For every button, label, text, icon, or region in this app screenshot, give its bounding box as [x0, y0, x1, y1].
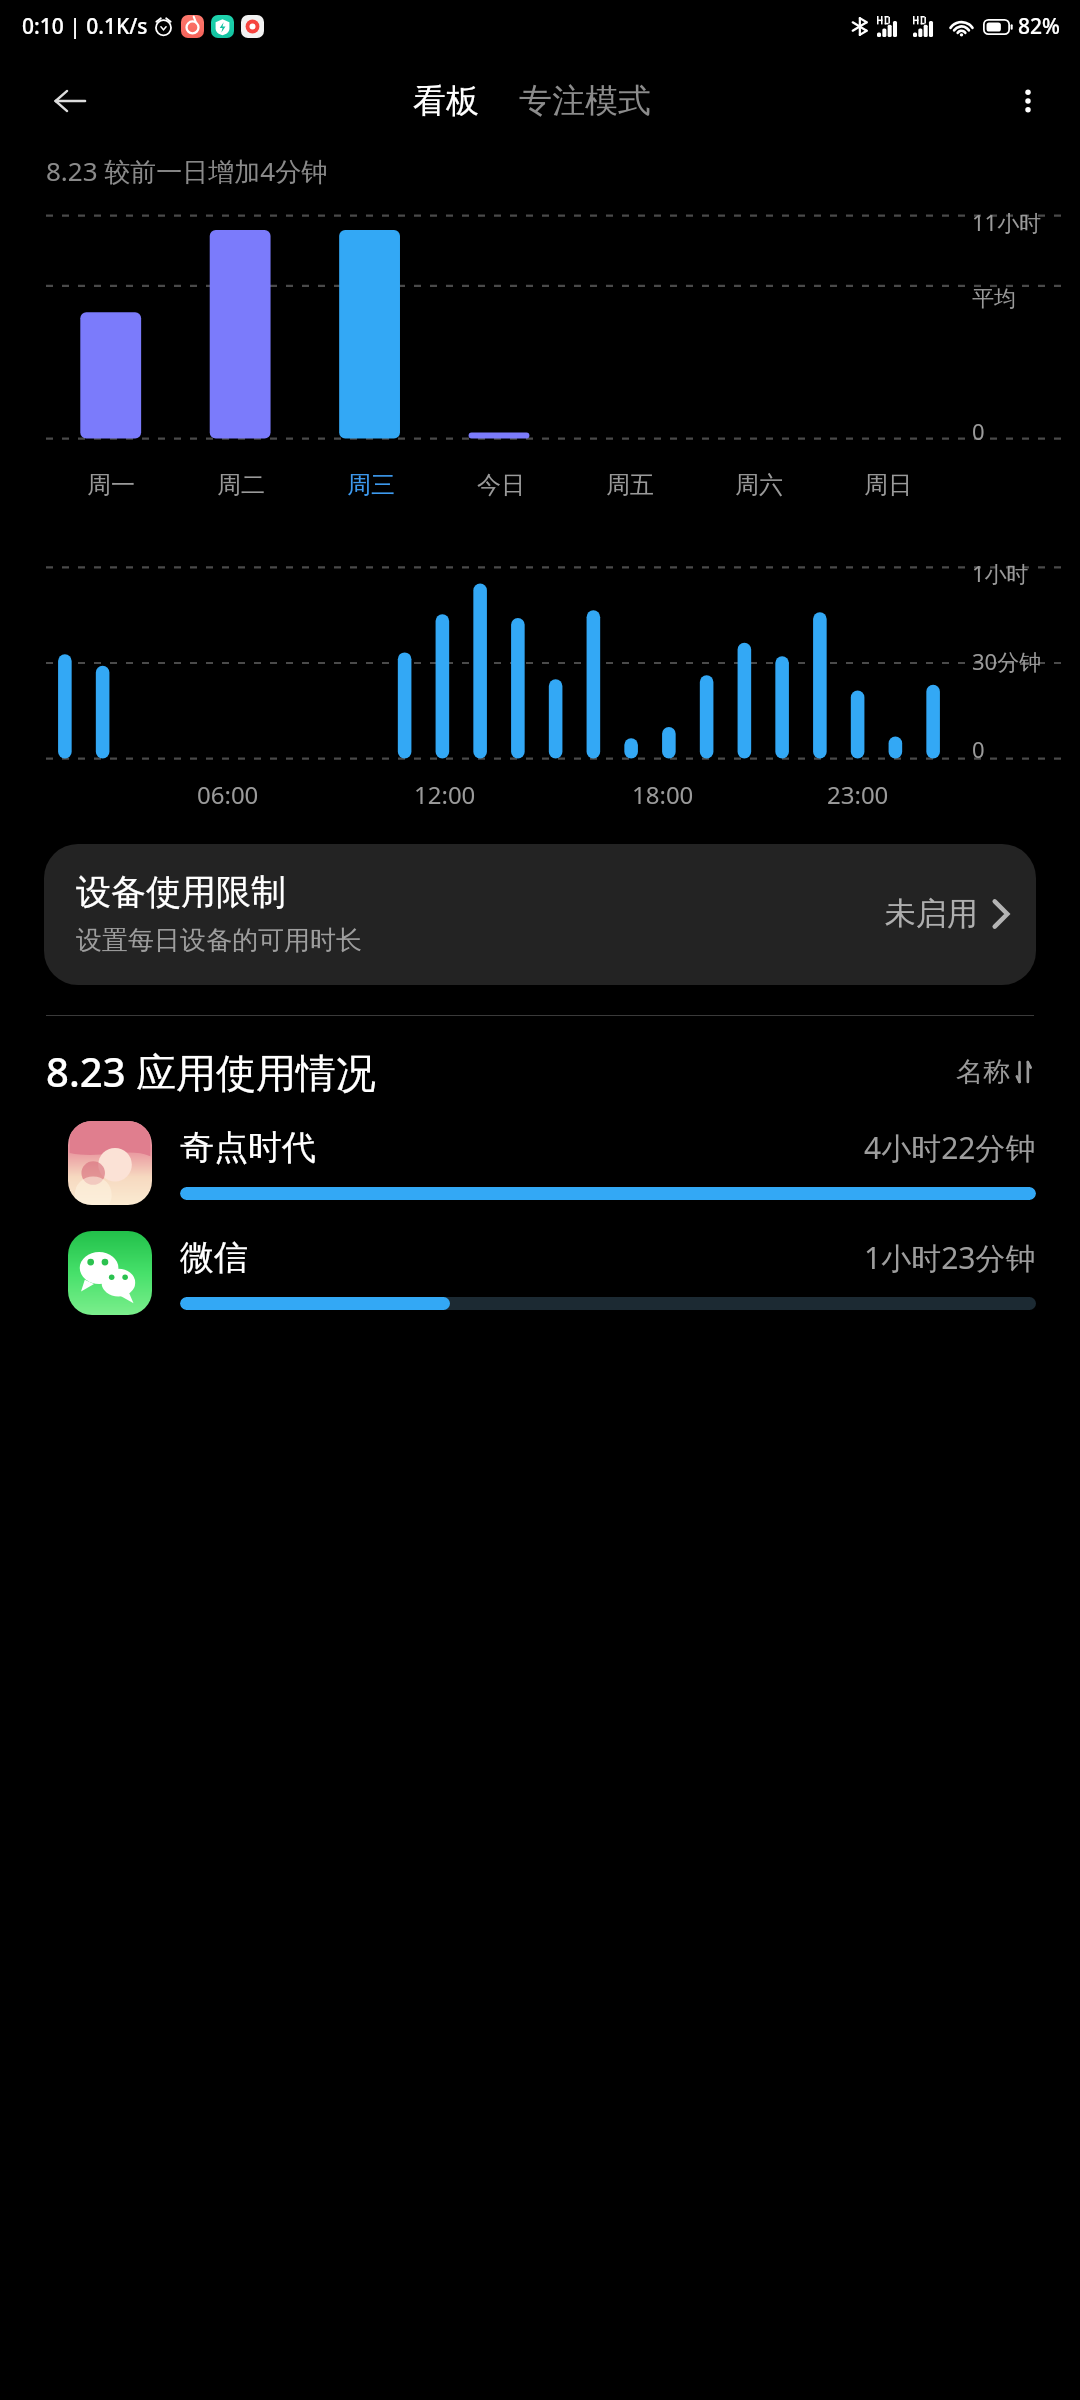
staticText: 23:00 [827, 778, 889, 811]
button[interactable]: 微信 [0, 1231, 1080, 1315]
staticText: 82% [1018, 12, 1060, 41]
staticText: 看板 [413, 80, 479, 122]
staticText: 周三 [347, 470, 395, 500]
button[interactable]: 专注模式 [513, 76, 657, 126]
staticText: 8.23 应用使用情况 [46, 1044, 376, 1099]
staticText: 12:00 [414, 778, 476, 811]
staticText: 周五 [606, 470, 654, 500]
button[interactable]: 周六 [694, 470, 823, 500]
staticText: 1小时 [972, 558, 1029, 588]
staticText: 今日 [477, 470, 525, 500]
staticText: 0:10 | 0.1K/s [22, 12, 148, 41]
staticText: 设置每日设备的可用时长 [76, 924, 362, 957]
staticText: 0 [972, 416, 985, 446]
button[interactable]: Back [44, 75, 96, 127]
button[interactable]: 周三 [306, 470, 436, 500]
staticText: 名称 [956, 1055, 1010, 1089]
staticText: 8.23 较前一日增加4分钟 [46, 153, 328, 189]
button[interactable]: 奇点时代 [0, 1121, 1080, 1205]
staticText: 周六 [735, 470, 783, 500]
button[interactable]: 看板 [407, 76, 485, 126]
staticText: 30分钟 [972, 646, 1042, 676]
button[interactable]: 周五 [565, 470, 694, 500]
button[interactable]: 周一 [46, 470, 176, 500]
button[interactable]: More options [1002, 75, 1054, 127]
staticText: 奇点时代 [180, 1126, 316, 1169]
staticText: 1小时23分钟 [864, 1237, 1036, 1278]
staticText: 18:00 [632, 778, 694, 811]
button[interactable]: 周二 [176, 470, 306, 500]
button[interactable]: 今日 [436, 470, 565, 500]
button[interactable]: 设备使用限制 [44, 844, 1036, 985]
staticText: 微信 [180, 1236, 248, 1279]
staticText: 06:00 [197, 778, 259, 811]
staticText: 周二 [217, 470, 265, 500]
staticText: 周一 [87, 470, 135, 500]
staticText: 专注模式 [519, 80, 651, 122]
button[interactable]: 名称 [952, 1051, 1036, 1093]
staticText: 0 [972, 734, 985, 764]
staticText: 4小时22分钟 [864, 1127, 1036, 1168]
button[interactable]: 周日 [823, 470, 952, 500]
staticText: 设备使用限制 [76, 870, 286, 914]
staticText: 11小时 [972, 207, 1042, 237]
staticText: 未启用 [885, 894, 978, 933]
staticText: 周日 [864, 470, 912, 500]
staticText: 平均 [972, 285, 1016, 313]
